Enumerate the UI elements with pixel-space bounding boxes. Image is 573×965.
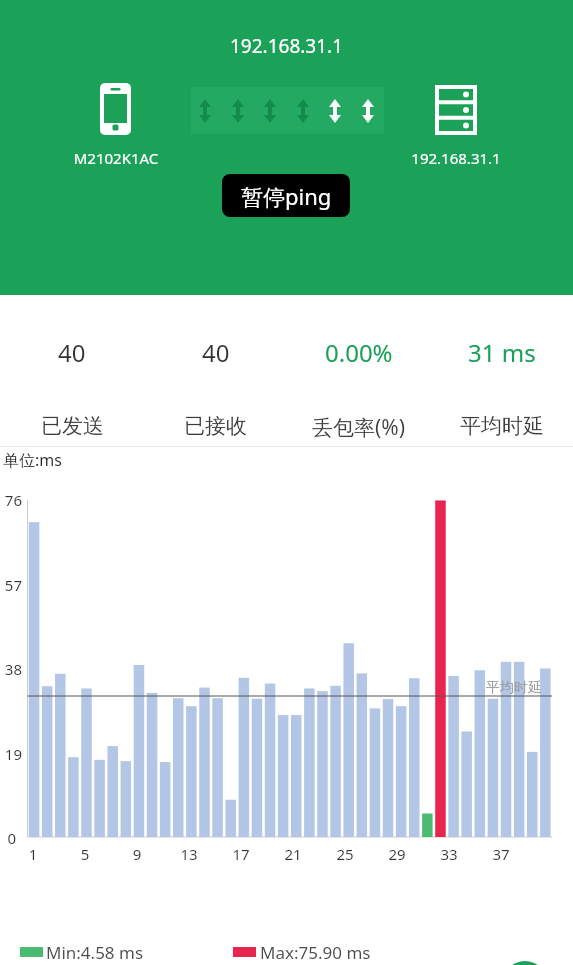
staticText: 29 — [382, 844, 412, 864]
button[interactable]: 暂停ping — [222, 174, 350, 217]
staticText: 57 — [0, 575, 22, 595]
staticText: 已发送 — [41, 413, 104, 439]
staticText: 19 — [0, 744, 22, 764]
staticText: 40 — [58, 336, 86, 369]
staticText: 丢包率(%) — [312, 413, 406, 442]
staticText: 已接收 — [184, 413, 247, 439]
staticText: 平均时延 — [486, 679, 566, 697]
staticText: 17 — [226, 844, 256, 864]
staticText: 192.168.31.1 — [386, 148, 526, 168]
staticText: M2102K1AC — [46, 148, 186, 168]
staticText: 76 — [0, 490, 22, 510]
staticText: 0.00% — [325, 336, 393, 369]
staticText: 单位:ms — [3, 449, 123, 471]
staticText: 38 — [0, 659, 22, 679]
button[interactable] — [503, 961, 547, 965]
staticText: 192.168.31.1 — [0, 33, 573, 59]
staticText: Max:75.90 ms — [260, 941, 420, 964]
staticText: 33 — [434, 844, 464, 864]
staticText: 21 — [278, 844, 308, 864]
staticText: 5 — [70, 844, 100, 864]
staticText: 13 — [174, 844, 204, 864]
staticText: 40 — [202, 336, 230, 369]
staticText: 1 — [18, 844, 48, 864]
staticText: 0 — [0, 828, 16, 848]
staticText: 暂停ping — [241, 181, 332, 211]
staticText: 31 ms — [468, 336, 536, 369]
staticText: Min:4.58 ms — [46, 941, 206, 964]
staticText: 平均时延 — [460, 413, 544, 439]
staticText: 25 — [330, 844, 360, 864]
staticText: 9 — [122, 844, 152, 864]
staticText: 37 — [486, 844, 516, 864]
